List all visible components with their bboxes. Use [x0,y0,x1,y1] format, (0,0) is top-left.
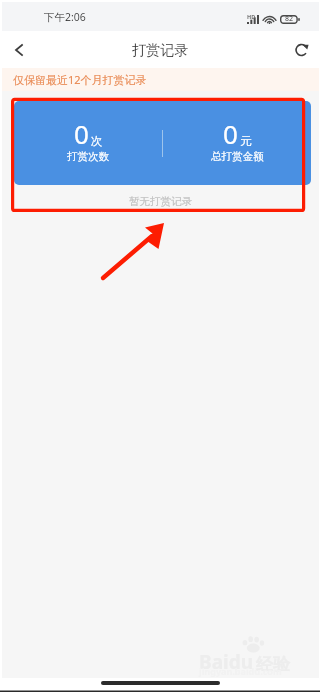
staticText: 0 [223,116,238,151]
staticText: jingyan.baidu.com [199,665,282,677]
button[interactable]: 返回 [2,31,36,68]
staticText: 82 [285,14,294,24]
staticText: 总打赏金额 [211,150,264,163]
staticText: 经验 [256,654,290,675]
staticText: 次 [91,134,103,148]
staticText: HD [247,13,256,20]
staticText: 打赏次数 [67,150,109,163]
staticText: 0 [74,116,89,151]
staticText: 暂无打赏记录 [2,195,319,208]
staticText: 仅保留最近12个月打赏记录 [13,72,147,87]
button[interactable]: 刷新 [283,31,319,68]
staticText: 打赏记录 [132,41,189,59]
staticText: Baidu [199,649,254,675]
staticText: 元 [240,134,252,148]
staticText: 下午2:06 [44,10,86,24]
button[interactable]: 0 [14,101,311,185]
